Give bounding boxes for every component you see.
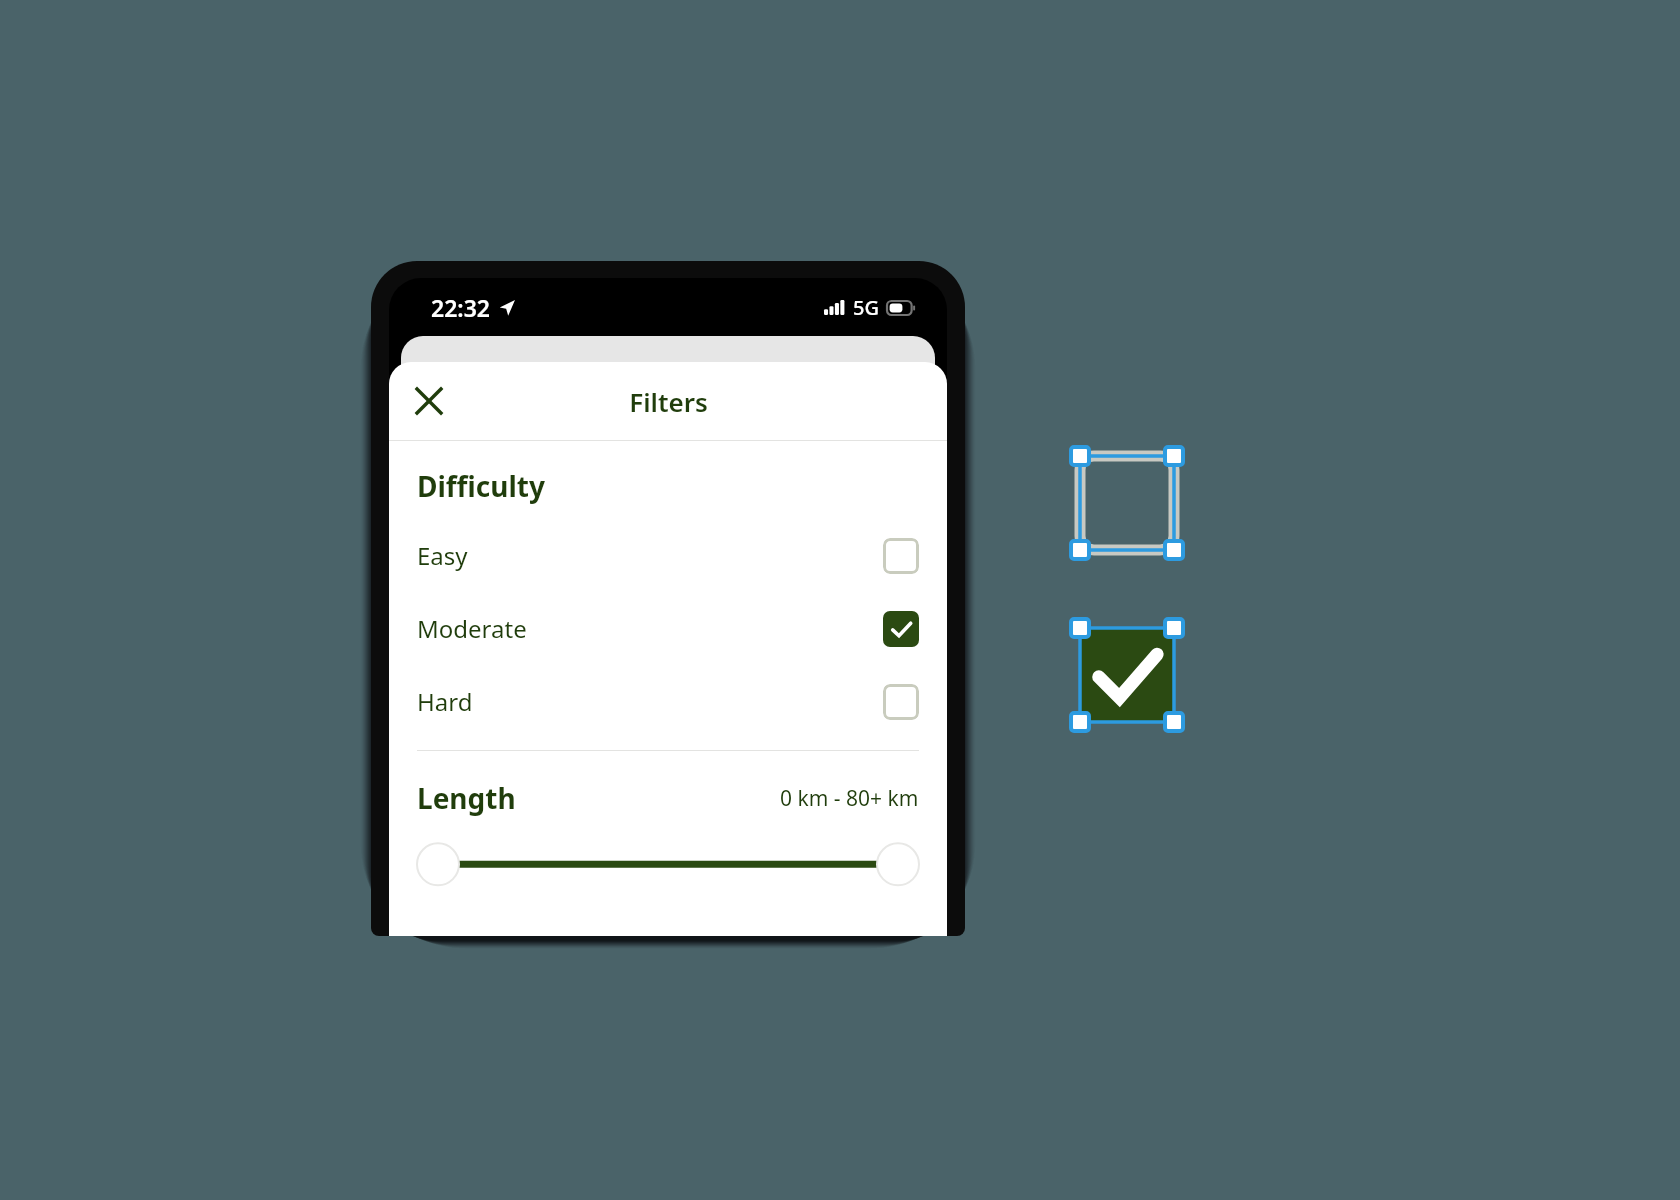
button[interactable]: Easy	[389, 519, 947, 592]
staticText: Hard	[417, 685, 473, 718]
staticText: Moderate	[417, 612, 527, 645]
staticText: Difficulty	[417, 467, 545, 505]
button[interactable]: Moderate	[389, 592, 947, 665]
staticText: Easy	[417, 539, 468, 572]
staticText: Length	[417, 779, 516, 817]
staticText: 5G	[853, 294, 879, 321]
staticText: 22:32	[431, 292, 490, 323]
button[interactable]: Close	[405, 377, 453, 425]
staticText: Filters	[629, 384, 708, 419]
staticText: 0 km - 80+ km	[780, 784, 919, 813]
button[interactable]: Hard	[389, 665, 947, 738]
